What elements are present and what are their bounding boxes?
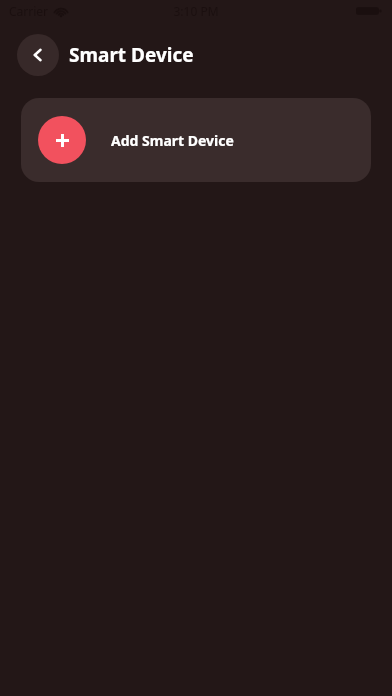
button[interactable]: Add Smart Device [21,98,371,182]
staticText: Add Smart Device [111,131,234,150]
button[interactable]: Back [17,34,59,76]
staticText: Smart Device [69,42,194,68]
